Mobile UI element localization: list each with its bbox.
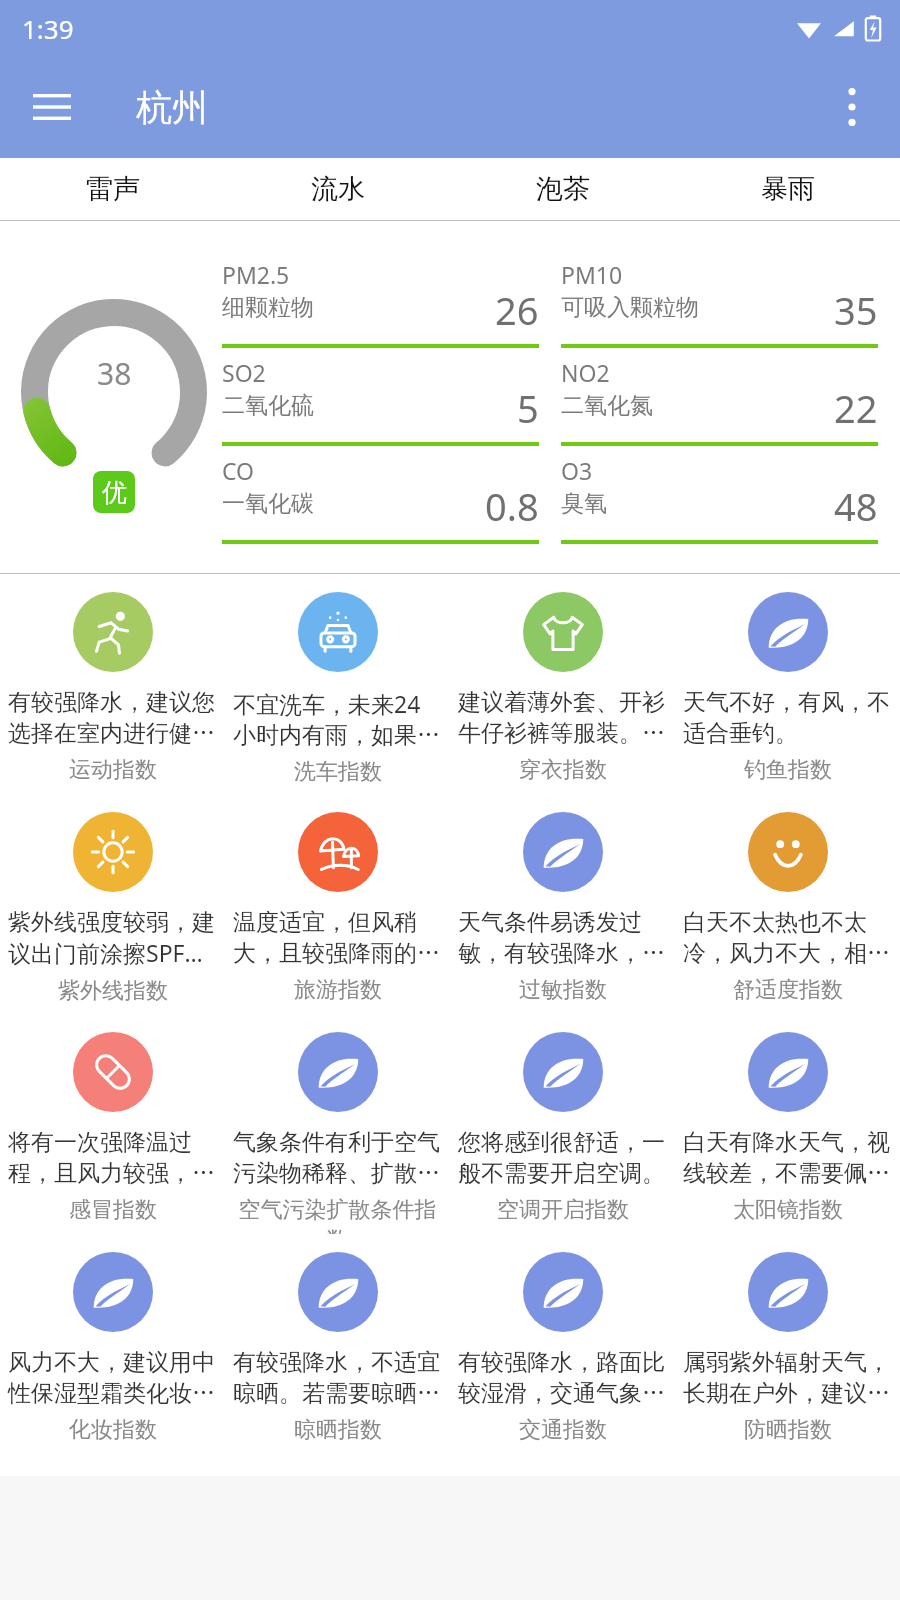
button[interactable]: 天气条件易诱发过敏，有较强降水，如…	[450, 794, 675, 1004]
button[interactable]: 建议着薄外套、开衫牛仔衫裤等服装。年…	[450, 574, 675, 784]
staticText: SO2	[222, 357, 266, 388]
staticText: 有较强降水，建议您选择在室内进行健身…	[8, 688, 217, 748]
staticText: 旅游指数	[294, 976, 382, 1004]
staticText: 风力不大，建议用中性保湿型霜类化妆品…	[8, 1348, 217, 1408]
staticText: 运动指数	[69, 756, 157, 784]
button[interactable]: 雷声	[0, 158, 225, 220]
staticText: 38	[97, 353, 132, 394]
staticText: 属弱紫外辐射天气，长期在户外，建议涂…	[683, 1348, 892, 1408]
staticText: 有较强降水，不适宜晾晒。若需要晾晒，…	[233, 1348, 442, 1408]
staticText: 泡茶	[536, 172, 590, 206]
button[interactable]: 有较强降水，建议您选择在室内进行健身…	[0, 574, 225, 784]
staticText: 洗车指数	[294, 758, 382, 786]
staticText: 杭州	[136, 85, 208, 130]
staticText: 防晒指数	[744, 1416, 832, 1444]
staticText: 紫外线指数	[58, 977, 168, 1005]
staticText: 不宜洗车，未来24小时内有雨，如果在此…	[233, 688, 442, 750]
staticText: 5	[517, 382, 539, 434]
button[interactable]: CO	[222, 455, 539, 544]
button[interactable]: 白天不太热也不太冷，风力不大，相信…	[675, 794, 900, 1004]
button[interactable]: 流水	[225, 158, 450, 220]
staticText: 雷声	[86, 172, 140, 206]
button[interactable]: 白天有降水天气，视线较差，不需要佩戴…	[675, 1014, 900, 1224]
button[interactable]: PM2.5	[222, 259, 539, 348]
button[interactable]: 泡茶	[450, 158, 675, 220]
button[interactable]: 气象条件有利于空气污染物稀释、扩散和…	[225, 1014, 450, 1234]
button[interactable]: O3	[561, 455, 878, 544]
staticText: 天气条件易诱发过敏，有较强降水，如…	[458, 908, 667, 968]
button[interactable]: NO2	[561, 357, 878, 446]
staticText: 一氧化碳	[222, 489, 314, 518]
button[interactable]: 属弱紫外辐射天气，长期在户外，建议涂…	[675, 1234, 900, 1444]
staticText: PM2.5	[222, 259, 290, 290]
button[interactable]: 紫外线强度较弱，建议出门前涂擦SPF在…	[0, 794, 225, 1005]
staticText: 臭氧	[561, 489, 607, 518]
button[interactable]: SO2	[222, 357, 539, 446]
staticText: 白天不太热也不太冷，风力不大，相信…	[683, 908, 892, 968]
button[interactable]: 天气不好，有风，不适合垂钓。	[675, 574, 900, 784]
staticText: 1:39	[22, 11, 74, 46]
button[interactable]: 有较强降水，不适宜晾晒。若需要晾晒，…	[225, 1234, 450, 1444]
staticText: 空气污染扩散条件指数	[233, 1196, 442, 1234]
staticText: 您将感到很舒适，一般不需要开启空调。	[458, 1128, 667, 1188]
staticText: 太阳镜指数	[733, 1196, 843, 1224]
staticText: 0.8	[485, 480, 539, 532]
button[interactable]: 不宜洗车，未来24小时内有雨，如果在此…	[225, 574, 450, 786]
button[interactable]: 温度适宜，但风稍大，且较强降雨的天…	[225, 794, 450, 1004]
staticText: 二氧化硫	[222, 391, 314, 420]
staticText: 舒适度指数	[733, 976, 843, 1004]
staticText: 白天有降水天气，视线较差，不需要佩戴…	[683, 1128, 892, 1188]
staticText: 交通指数	[519, 1416, 607, 1444]
staticText: 化妆指数	[69, 1416, 157, 1444]
staticText: 紫外线强度较弱，建议出门前涂擦SPF在…	[8, 908, 217, 969]
button[interactable]: 您将感到很舒适，一般不需要开启空调。	[450, 1014, 675, 1224]
button[interactable]: Menu	[20, 75, 84, 139]
staticText: PM10	[561, 259, 623, 290]
staticText: O3	[561, 455, 593, 486]
staticText: 22	[834, 382, 878, 434]
button[interactable]: 暴雨	[675, 158, 900, 220]
staticText: CO	[222, 455, 255, 486]
staticText: 可吸入颗粒物	[561, 293, 699, 322]
staticText: 流水	[311, 172, 365, 206]
staticText: NO2	[561, 357, 610, 388]
staticText: 温度适宜，但风稍大，且较强降雨的天…	[233, 908, 442, 968]
button[interactable]: More options	[822, 77, 882, 137]
staticText: 48	[834, 480, 878, 532]
staticText: 将有一次强降温过程，且风力较强，极…	[8, 1128, 217, 1188]
staticText: 优	[102, 477, 127, 508]
staticText: 过敏指数	[519, 976, 607, 1004]
button[interactable]: 将有一次强降温过程，且风力较强，极…	[0, 1014, 225, 1224]
button[interactable]: 有较强降水，路面比较湿滑，交通气象条…	[450, 1234, 675, 1444]
staticText: 晾晒指数	[294, 1416, 382, 1444]
staticText: 暴雨	[761, 172, 815, 206]
button[interactable]: 风力不大，建议用中性保湿型霜类化妆品…	[0, 1234, 225, 1444]
button[interactable]: PM10	[561, 259, 878, 348]
staticText: 细颗粒物	[222, 293, 314, 322]
staticText: 26	[495, 284, 539, 336]
staticText: 天气不好，有风，不适合垂钓。	[683, 688, 892, 748]
staticText: 有较强降水，路面比较湿滑，交通气象条…	[458, 1348, 667, 1408]
staticText: 穿衣指数	[519, 756, 607, 784]
staticText: 二氧化氮	[561, 391, 653, 420]
staticText: 感冒指数	[69, 1196, 157, 1224]
staticText: 钓鱼指数	[744, 756, 832, 784]
staticText: 35	[834, 284, 878, 336]
staticText: 建议着薄外套、开衫牛仔衫裤等服装。年…	[458, 688, 667, 748]
staticText: 气象条件有利于空气污染物稀释、扩散和…	[233, 1128, 442, 1188]
staticText: 空调开启指数	[497, 1196, 629, 1224]
